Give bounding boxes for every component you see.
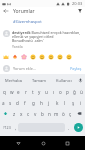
- button[interactable]: Paylaş: [70, 66, 82, 71]
- staticText: f: [24, 100, 26, 106]
- staticText: x: [20, 111, 23, 117]
- button[interactable]: ?123: [0, 119, 13, 136]
- button[interactable]: Emoji: [3, 54, 9, 60]
- staticText: i: [80, 100, 82, 106]
- staticText: c: [27, 111, 30, 117]
- staticText: ü: [80, 89, 83, 95]
- button[interactable]: Emoji: [21, 54, 27, 60]
- staticText: Yorum ekle...: [13, 66, 37, 71]
- button[interactable]: f: [21, 97, 29, 108]
- button[interactable]: h: [37, 97, 45, 108]
- staticText: n: [48, 111, 51, 117]
- staticText: ,: [15, 125, 17, 131]
- staticText: j: [48, 100, 50, 106]
- staticText: r: [25, 89, 27, 95]
- button[interactable]: Emoji: [39, 54, 45, 60]
- staticText: h: [40, 100, 43, 106]
- staticText: ğ: [73, 89, 76, 95]
- staticText: b: [41, 111, 44, 117]
- button[interactable]: Emoji: [30, 54, 36, 60]
- staticText: Merhaba: [5, 78, 22, 83]
- button[interactable]: s: [7, 97, 14, 108]
- button[interactable]: Tamam: [26, 74, 51, 86]
- button[interactable]: ,: [13, 119, 18, 136]
- staticText: l: [64, 100, 66, 106]
- staticText: p: [66, 89, 69, 95]
- button[interactable]: Emoji: [66, 54, 72, 60]
- button[interactable]: ğ: [71, 86, 78, 97]
- button[interactable]: Shift: [0, 108, 11, 119]
- button[interactable]: ü: [78, 86, 85, 97]
- button[interactable]: i: [77, 97, 85, 108]
- staticText: m: [54, 111, 59, 117]
- staticText: ş: [72, 100, 75, 106]
- staticText: #Gizemhaspot: [13, 19, 42, 25]
- staticText: ö: [62, 111, 65, 117]
- staticText: destiyerdk Bunuhised ervçok hazırdılan, …: [12, 30, 81, 43]
- button[interactable]: u: [43, 86, 50, 97]
- staticText: e: [17, 89, 20, 95]
- button[interactable]: ö: [60, 108, 67, 119]
- staticText: g: [32, 100, 35, 106]
- staticText: k: [56, 100, 59, 106]
- button[interactable]: n: [46, 108, 53, 119]
- button[interactable]: Back: [12, 137, 24, 149]
- button[interactable]: Back: [0, 7, 11, 15]
- staticText: t: [32, 89, 34, 95]
- staticText: o: [59, 89, 62, 95]
- button[interactable]: .: [65, 119, 72, 136]
- button[interactable]: y: [36, 86, 43, 97]
- button[interactable]: z: [11, 108, 18, 119]
- button[interactable]: e: [15, 86, 22, 97]
- staticText: v: [34, 111, 37, 117]
- button[interactable]: Home: [37, 137, 49, 149]
- button[interactable]: Backspace: [74, 108, 85, 119]
- staticText: d: [16, 100, 19, 106]
- staticText: u: [45, 89, 48, 95]
- button[interactable]: Enter: [72, 119, 85, 136]
- button[interactable]: g: [29, 97, 37, 108]
- button[interactable]: w: [8, 86, 15, 97]
- staticText: .: [68, 125, 70, 131]
- button[interactable]: Recents: [61, 137, 73, 149]
- staticText: y: [38, 89, 41, 95]
- button[interactable]: a: [0, 97, 7, 108]
- button[interactable]: ç: [67, 108, 74, 119]
- button[interactable]: t: [29, 86, 36, 97]
- button[interactable]: l: [61, 97, 69, 108]
- button[interactable]: Filter: [74, 7, 85, 15]
- staticText: Kullanıcı: [56, 78, 72, 83]
- button[interactable]: p: [64, 86, 71, 97]
- button[interactable]: Kullanıcı: [51, 74, 76, 86]
- button[interactable]: Merhaba: [0, 74, 26, 86]
- staticText: ç: [69, 111, 72, 117]
- button[interactable]: Voice input: [76, 74, 85, 86]
- button[interactable]: ş: [69, 97, 77, 108]
- button[interactable]: d: [14, 97, 21, 108]
- staticText: 20:03: [72, 1, 83, 6]
- staticText: a: [2, 100, 5, 106]
- button[interactable]: ı: [50, 86, 57, 97]
- button[interactable]: v: [32, 108, 39, 119]
- staticText: ı: [53, 89, 55, 95]
- button[interactable]: Emoji: [57, 54, 63, 60]
- staticText: Yorumlar: [13, 8, 35, 15]
- staticText: ?123: [3, 125, 11, 130]
- staticText: Tamam: [32, 78, 46, 83]
- button[interactable]: o: [57, 86, 64, 97]
- button[interactable]: k: [53, 97, 61, 108]
- button[interactable]: j: [45, 97, 53, 108]
- button[interactable]: Emoji: [48, 54, 54, 60]
- staticText: Yanıtla: [12, 44, 23, 49]
- button[interactable]: x: [18, 108, 25, 119]
- button[interactable]: q: [0, 86, 8, 97]
- staticText: s: [9, 100, 12, 106]
- button[interactable]: Emoji: [12, 54, 18, 60]
- button[interactable]: m: [53, 108, 60, 119]
- button[interactable]: b: [39, 108, 46, 119]
- button[interactable]: r: [22, 86, 29, 97]
- staticText: w: [10, 89, 14, 95]
- button[interactable]: c: [25, 108, 32, 119]
- staticText: Paylaş: [70, 66, 82, 71]
